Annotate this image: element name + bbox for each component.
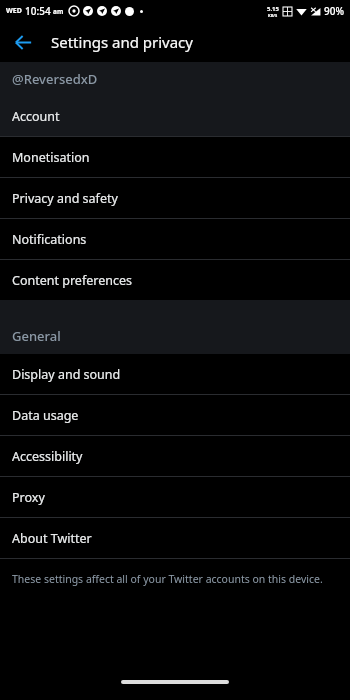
staticText: Monetisation (12, 149, 90, 166)
staticText: 5.15 (267, 5, 279, 13)
staticText: Display and sound (12, 366, 121, 383)
button[interactable]: Notifications (0, 219, 350, 259)
button[interactable]: Accessibility (0, 436, 350, 476)
staticText: 10:54 (25, 4, 51, 18)
staticText: Privacy and safety (12, 190, 118, 207)
staticText: Account (12, 108, 60, 125)
button[interactable]: Proxy (0, 477, 350, 517)
staticText: am (53, 7, 64, 16)
staticText: Data usage (12, 407, 79, 424)
staticText: About Twitter (12, 530, 92, 547)
staticText: Content preferences (12, 272, 132, 289)
staticText: General (12, 327, 61, 345)
button[interactable]: Account (0, 96, 350, 136)
staticText: KB/S (268, 13, 278, 18)
staticText: WED (6, 6, 22, 16)
staticText: These settings affect all of your Twitte… (12, 572, 323, 586)
button[interactable]: About Twitter (0, 518, 350, 558)
button[interactable]: Data usage (0, 395, 350, 435)
button[interactable]: Monetisation (0, 137, 350, 177)
button[interactable]: Back (6, 25, 40, 59)
button[interactable]: Display and sound (0, 354, 350, 394)
button[interactable]: Content preferences (0, 260, 350, 300)
staticText: @ReversedxD (12, 70, 98, 88)
staticText: Proxy (12, 489, 45, 506)
staticText: 90% (324, 4, 344, 18)
staticText: Accessibility (12, 448, 83, 465)
staticText: Settings and privacy (51, 32, 193, 52)
button[interactable]: Privacy and safety (0, 178, 350, 218)
staticText: Notifications (12, 231, 87, 248)
